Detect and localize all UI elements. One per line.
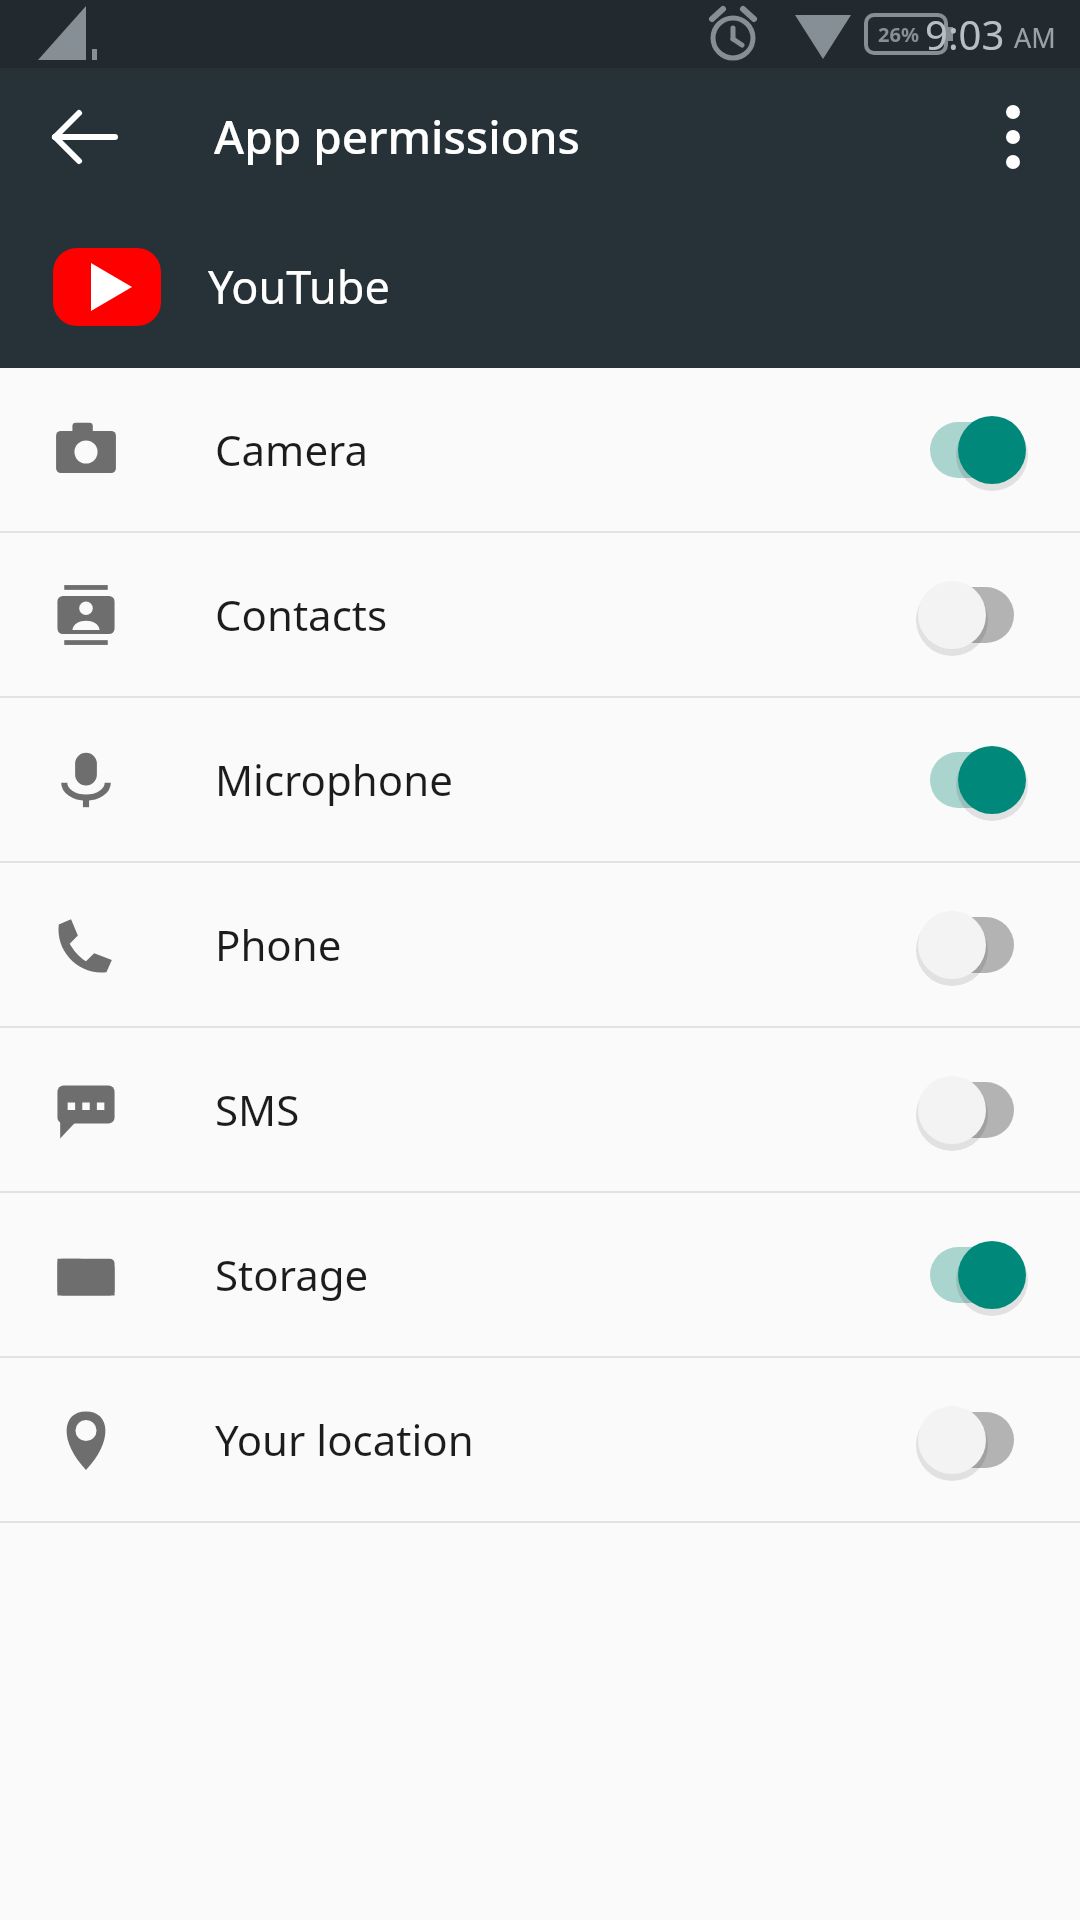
button[interactable]: Microphone xyxy=(0,698,1080,861)
staticText: Microphone xyxy=(215,751,453,808)
staticText: Phone xyxy=(215,916,342,973)
staticText: Contacts xyxy=(215,586,388,643)
button[interactable]: More options xyxy=(970,94,1056,180)
staticText: AM xyxy=(1014,19,1056,56)
button[interactable]: SMS xyxy=(0,1028,1080,1191)
staticText: App permissions xyxy=(214,105,580,168)
staticText: Your location xyxy=(215,1411,474,1468)
staticText: Camera xyxy=(215,421,369,478)
staticText: 9:03 xyxy=(925,7,1005,61)
staticText: Storage xyxy=(215,1246,369,1303)
staticText: 26% xyxy=(878,21,919,48)
button[interactable]: Storage xyxy=(0,1193,1080,1356)
staticText: SMS xyxy=(215,1081,300,1138)
button[interactable]: Contacts xyxy=(0,533,1080,696)
staticText: YouTube xyxy=(208,256,390,317)
button[interactable]: Your location xyxy=(0,1358,1080,1521)
button[interactable]: Back xyxy=(42,94,128,180)
button[interactable]: Camera xyxy=(0,368,1080,531)
button[interactable]: Phone xyxy=(0,863,1080,1026)
button[interactable]: YouTube xyxy=(0,205,1080,368)
